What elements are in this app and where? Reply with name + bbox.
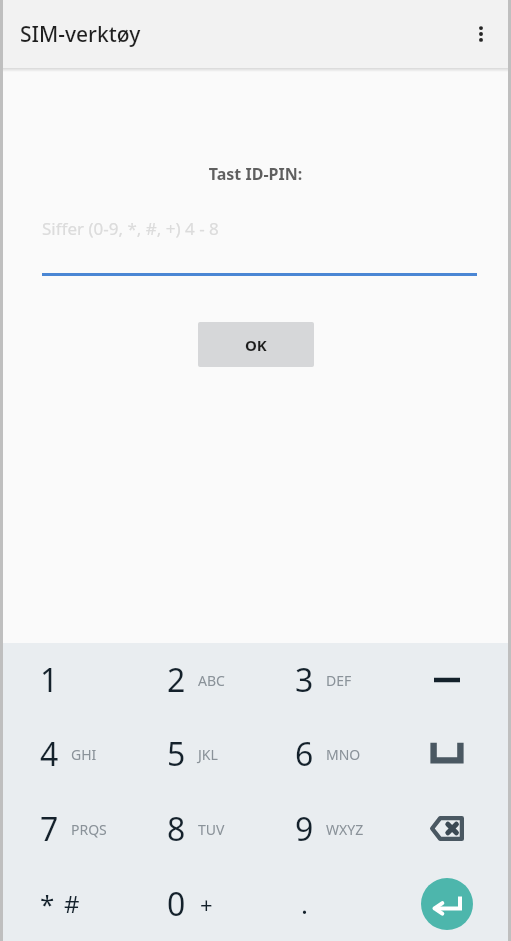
button[interactable]: Minus: [383, 643, 511, 717]
button[interactable]: .: [255, 866, 383, 941]
button[interactable]: 9: [255, 791, 383, 866]
button[interactable]: 0: [127, 866, 255, 941]
staticText: 1: [40, 658, 59, 702]
button[interactable]: 4: [0, 717, 127, 791]
button[interactable]: OK: [198, 322, 314, 367]
button[interactable]: 3: [255, 643, 383, 717]
staticText: .: [301, 886, 308, 921]
staticText: 7: [40, 807, 59, 851]
button[interactable]: Space: [383, 717, 511, 791]
staticText: 5: [167, 732, 186, 776]
staticText: +: [200, 889, 213, 919]
staticText: 2: [167, 658, 186, 702]
button[interactable]: *: [0, 866, 127, 941]
staticText: #: [64, 887, 80, 920]
staticText: Siffer (0-9, *, #, +) 4 - 8: [42, 217, 219, 240]
staticText: 4: [40, 732, 59, 776]
button[interactable]: 6: [255, 717, 383, 791]
staticText: 0: [167, 882, 186, 926]
staticText: 6: [295, 732, 314, 776]
staticText: ABC: [198, 671, 225, 690]
button[interactable]: More options: [459, 12, 503, 56]
button[interactable]: 5: [127, 717, 255, 791]
button[interactable]: 8: [127, 791, 255, 866]
staticText: GHI: [71, 745, 97, 764]
staticText: Tast ID-PIN:: [0, 163, 511, 185]
staticText: JKL: [198, 745, 218, 764]
staticText: *: [40, 886, 55, 921]
staticText: MNO: [326, 745, 361, 764]
staticText: PRQS: [71, 820, 107, 839]
staticText: OK: [245, 335, 267, 355]
staticText: 8: [167, 807, 186, 851]
button[interactable]: Siffer (0-9, *, #, +) 4 - 8: [42, 217, 477, 276]
button[interactable]: Enter: [383, 866, 511, 941]
staticText: WXYZ: [326, 820, 364, 839]
button[interactable]: Backspace: [383, 791, 511, 866]
staticText: TUV: [198, 820, 225, 839]
staticText: 9: [295, 807, 314, 851]
staticText: 3: [295, 658, 314, 702]
staticText: SIM-verktøy: [20, 20, 141, 49]
button[interactable]: 2: [127, 643, 255, 717]
button[interactable]: 1: [0, 643, 127, 717]
staticText: DEF: [326, 671, 352, 690]
button[interactable]: 7: [0, 791, 127, 866]
